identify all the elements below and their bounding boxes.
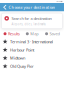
button[interactable]: Search for a destination	[0, 11, 64, 29]
button[interactable]: Results	[2, 31, 22, 37]
button[interactable]: Harbour Point	[0, 46, 64, 54]
button[interactable]: Back	[1, 3, 8, 11]
staticText: Search for a destination	[11, 16, 51, 21]
staticText: Midtown	[10, 55, 25, 61]
button[interactable]: Terminal 3 · International	[0, 38, 64, 46]
staticText: Airports, cities, landmarks	[11, 22, 45, 26]
staticText: Saved	[49, 31, 59, 36]
staticText: Choose your destination	[8, 5, 55, 10]
staticText: Terminal 3 · International	[10, 39, 53, 44]
staticText: Map	[30, 31, 38, 36]
staticText: Harbour Point	[10, 47, 34, 52]
button[interactable]: Map	[22, 31, 42, 37]
button[interactable]: Old Quay Pier	[0, 62, 64, 70]
button[interactable]: Midtown	[0, 54, 64, 62]
button[interactable]: Saved	[42, 31, 62, 37]
staticText: Results	[8, 31, 20, 36]
staticText: Old Quay Pier	[10, 64, 34, 69]
